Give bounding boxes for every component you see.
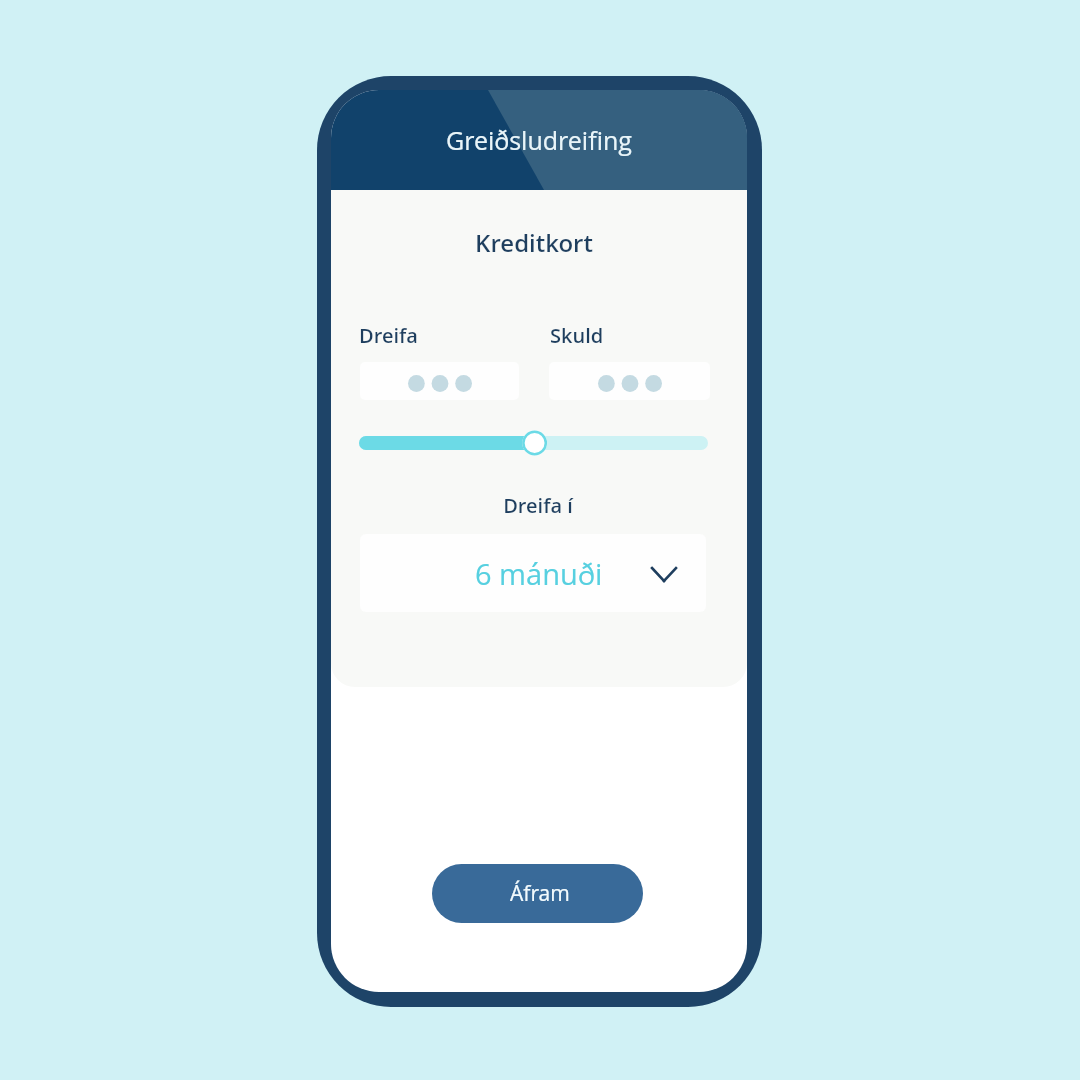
staticText: Kreditkort — [331, 226, 742, 259]
staticText: Dreifa — [359, 322, 418, 349]
button[interactable]: Spread amount slider — [347, 420, 720, 466]
button[interactable]: Dreifa amount — [360, 362, 519, 400]
button[interactable]: Áfram — [432, 864, 643, 923]
staticText: Skuld — [550, 322, 604, 349]
staticText: Greiðsludreifing — [331, 123, 747, 157]
staticText: Dreifa í — [331, 492, 746, 519]
staticText: 6 mánuði — [475, 554, 603, 593]
staticText: Áfram — [510, 879, 570, 908]
button[interactable]: Skuld amount — [549, 362, 710, 400]
button[interactable]: 6 mánuði — [360, 534, 706, 612]
